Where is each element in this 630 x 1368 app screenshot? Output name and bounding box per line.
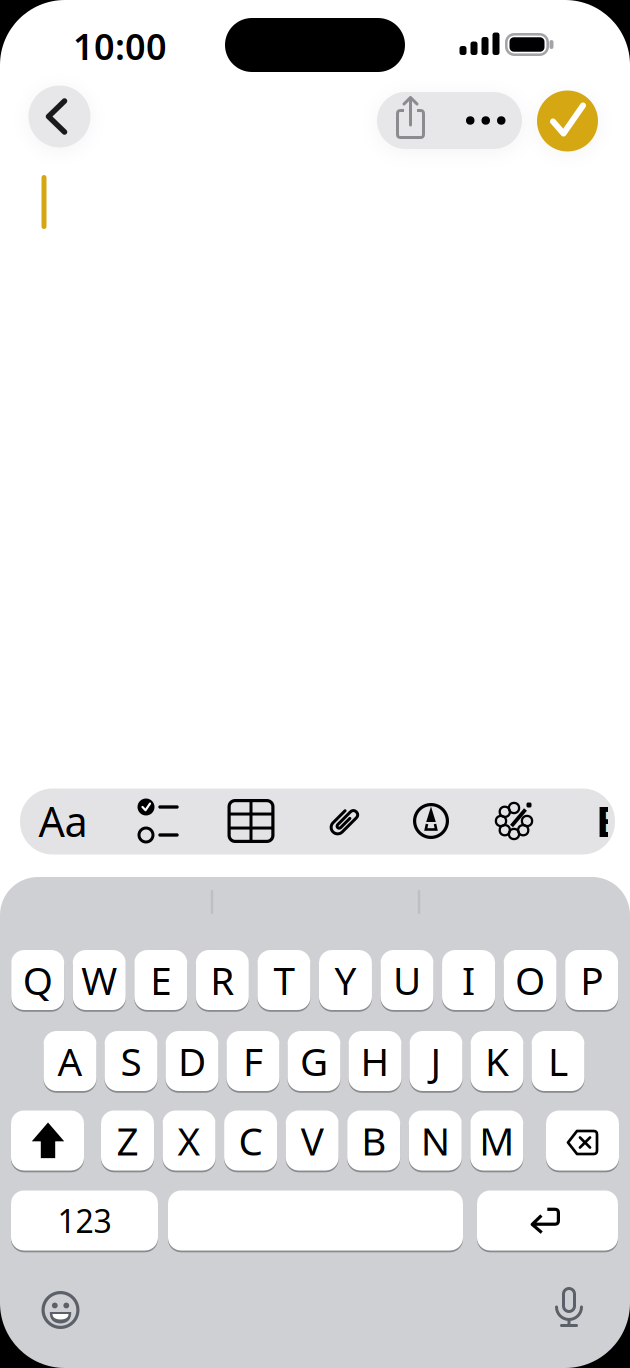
button[interactable]: Return xyxy=(477,1189,618,1251)
button[interactable]: U xyxy=(380,949,433,1011)
button[interactable]: Share xyxy=(377,92,449,149)
button[interactable]: R xyxy=(196,949,249,1011)
staticText: Y xyxy=(334,954,356,1006)
button[interactable]: O xyxy=(504,949,557,1011)
button[interactable]: T xyxy=(257,949,310,1011)
button[interactable]: More xyxy=(449,92,522,149)
button[interactable]: C xyxy=(224,1109,277,1171)
button[interactable]: V xyxy=(286,1109,339,1171)
button[interactable]: Bold xyxy=(596,794,608,848)
button[interactable]: Q xyxy=(11,949,64,1011)
button[interactable]: E xyxy=(134,949,187,1011)
staticText: B xyxy=(596,794,623,848)
staticText: 10:00 xyxy=(73,22,167,70)
staticText: P xyxy=(580,954,603,1006)
staticText: D xyxy=(178,1035,206,1087)
staticText: W xyxy=(81,954,117,1006)
button[interactable]: I xyxy=(442,949,495,1011)
button[interactable]: P xyxy=(565,949,618,1011)
staticText: K xyxy=(485,1035,509,1087)
button[interactable]: W xyxy=(73,949,126,1011)
button[interactable]: M xyxy=(470,1109,523,1171)
button[interactable]: Attach xyxy=(320,797,368,845)
staticText: Z xyxy=(116,1115,138,1166)
staticText: M xyxy=(479,1115,514,1166)
button[interactable]: B xyxy=(347,1109,400,1171)
staticText: S xyxy=(120,1035,141,1087)
button[interactable]: 123 xyxy=(11,1189,158,1251)
staticText: F xyxy=(243,1035,263,1087)
button[interactable]: Markup xyxy=(407,797,455,845)
button[interactable]: X xyxy=(163,1109,216,1171)
button[interactable]: G xyxy=(287,1030,340,1092)
button[interactable]: N xyxy=(409,1109,462,1171)
button[interactable]: A xyxy=(43,1030,96,1092)
staticText: H xyxy=(360,1035,389,1087)
staticText: T xyxy=(273,954,294,1006)
staticText: U xyxy=(393,954,421,1006)
staticText: G xyxy=(300,1035,328,1087)
staticText: J xyxy=(430,1035,441,1087)
button[interactable]: H xyxy=(348,1030,401,1092)
button[interactable]: Z xyxy=(101,1109,154,1171)
button[interactable]: F xyxy=(226,1030,279,1092)
button[interactable]: K xyxy=(470,1030,523,1092)
staticText: R xyxy=(210,954,234,1006)
staticText: 123 xyxy=(57,1199,111,1242)
button[interactable]: L xyxy=(531,1030,584,1092)
staticText: Q xyxy=(23,954,53,1006)
button[interactable]: Shift xyxy=(11,1109,84,1171)
staticText: V xyxy=(301,1115,324,1166)
staticText: E xyxy=(150,954,171,1006)
button[interactable]: Checklist xyxy=(135,797,179,845)
button[interactable]: Delete xyxy=(546,1109,619,1171)
button[interactable]: Format xyxy=(38,794,87,848)
button[interactable]: Emoji xyxy=(38,1288,82,1332)
staticText: I xyxy=(462,954,475,1006)
staticText: N xyxy=(421,1115,450,1166)
button[interactable]: D xyxy=(165,1030,218,1092)
button[interactable]: Back xyxy=(28,85,90,147)
staticText: X xyxy=(178,1115,201,1166)
button[interactable] xyxy=(168,1189,463,1251)
staticText: L xyxy=(548,1035,568,1087)
button[interactable]: Image Wand xyxy=(491,795,543,847)
button[interactable]: Table xyxy=(227,799,274,843)
button[interactable]: Dictate xyxy=(549,1283,589,1331)
staticText: C xyxy=(239,1115,263,1166)
staticText: A xyxy=(57,1035,82,1087)
button[interactable]: J xyxy=(409,1030,462,1092)
staticText: Aa xyxy=(38,794,87,848)
button[interactable]: S xyxy=(104,1030,157,1092)
button[interactable]: Done xyxy=(537,90,598,151)
button[interactable]: Y xyxy=(319,949,372,1011)
staticText: B xyxy=(361,1115,386,1166)
staticText: O xyxy=(515,954,545,1006)
